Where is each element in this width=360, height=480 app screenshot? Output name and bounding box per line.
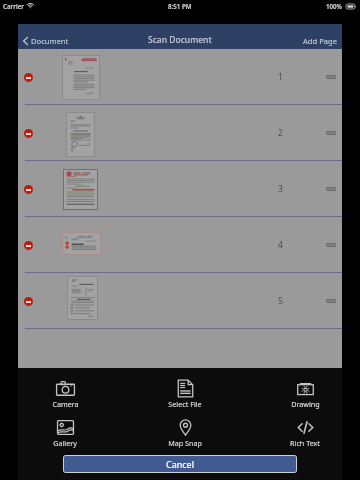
other: Delete bbox=[24, 241, 33, 250]
button[interactable]: Map Snap bbox=[150, 418, 220, 448]
button[interactable]: Document bbox=[18, 31, 77, 49]
other: Reorder bbox=[326, 187, 336, 191]
button[interactable]: Delete bbox=[18, 105, 342, 161]
other: Delete bbox=[24, 297, 33, 306]
button[interactable]: Rich Text bbox=[270, 418, 340, 448]
button[interactable]: Delete bbox=[18, 217, 342, 273]
other: Reorder bbox=[326, 75, 336, 79]
button[interactable]: Delete bbox=[18, 273, 342, 329]
other: Reorder bbox=[326, 131, 336, 135]
staticText: 4 bbox=[278, 239, 283, 251]
other: Delete bbox=[24, 185, 33, 194]
button[interactable]: Select File bbox=[150, 379, 220, 409]
other: Reorder bbox=[326, 299, 336, 303]
staticText: 3 bbox=[278, 183, 283, 195]
staticText: 8:51 PM bbox=[168, 2, 192, 10]
button[interactable]: Gallery bbox=[30, 418, 100, 448]
staticText: Rich Text bbox=[290, 438, 320, 448]
staticText: 2 bbox=[278, 127, 283, 139]
staticText: Select File bbox=[168, 399, 202, 409]
staticText: Document bbox=[31, 36, 69, 46]
button[interactable]: Delete bbox=[18, 49, 342, 105]
button[interactable]: Drawing bbox=[270, 379, 340, 409]
other: Reorder bbox=[326, 243, 336, 247]
other: Delete bbox=[24, 73, 33, 82]
staticText: Scan Document bbox=[148, 34, 212, 46]
button[interactable]: Delete bbox=[18, 161, 342, 217]
staticText: Drawing bbox=[291, 399, 320, 409]
staticText: 100% bbox=[326, 2, 343, 10]
button[interactable]: Cancel bbox=[63, 455, 297, 473]
button[interactable]: Add Page bbox=[295, 31, 342, 49]
button[interactable]: Camera bbox=[30, 379, 100, 409]
staticText: Map Snap bbox=[168, 438, 202, 448]
staticText: 5 bbox=[278, 295, 283, 307]
staticText: Cancel bbox=[166, 458, 195, 470]
staticText: Carrier bbox=[3, 2, 24, 10]
staticText: 1 bbox=[278, 71, 283, 83]
staticText: Camera bbox=[52, 399, 79, 409]
staticText: Add Page bbox=[303, 36, 337, 46]
staticText: Gallery bbox=[53, 438, 77, 448]
other: Delete bbox=[24, 129, 33, 138]
